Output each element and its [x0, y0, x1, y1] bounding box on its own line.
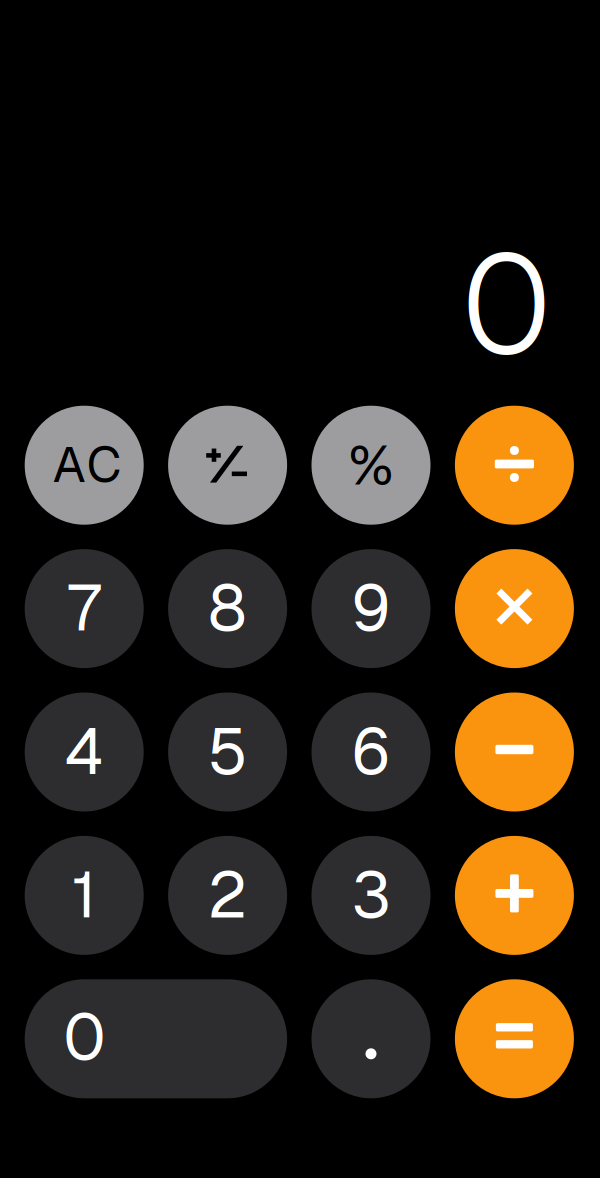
button[interactable]: 5 [168, 692, 287, 811]
staticText: 3 [351, 853, 390, 936]
staticText: 0 [461, 215, 551, 393]
staticText: % [348, 428, 393, 501]
button[interactable]: 2 [168, 836, 287, 955]
button[interactable]: % [311, 406, 430, 525]
staticText: 8 [208, 566, 247, 649]
button[interactable]: 9 [311, 549, 430, 668]
staticText: 9 [351, 566, 391, 649]
button[interactable]: 7 [25, 549, 144, 668]
button[interactable]: Equals [455, 979, 574, 1098]
button[interactable]: 0 [25, 979, 287, 1098]
button[interactable]: Add [455, 836, 574, 955]
staticText: 5 [208, 710, 248, 793]
staticText: 2 [208, 853, 248, 936]
staticText: 7 [67, 566, 101, 649]
button[interactable]: Divide [455, 406, 574, 525]
button[interactable]: 4 [25, 692, 144, 811]
staticText: AC [53, 432, 122, 496]
staticText: 0 [63, 995, 105, 1078]
button[interactable]: 3 [311, 836, 430, 955]
button[interactable]: Decimal point [311, 979, 430, 1098]
staticText: 4 [65, 710, 104, 793]
button[interactable]: 6 [311, 692, 430, 811]
button[interactable]: 8 [168, 549, 287, 668]
button[interactable]: Plus minus [168, 406, 287, 525]
button[interactable]: 1 [25, 836, 144, 955]
button[interactable]: AC [25, 406, 144, 525]
staticText: 1 [72, 853, 97, 936]
button[interactable]: Subtract [455, 692, 574, 811]
staticText: 6 [351, 710, 391, 793]
button[interactable]: Multiply [455, 549, 574, 668]
